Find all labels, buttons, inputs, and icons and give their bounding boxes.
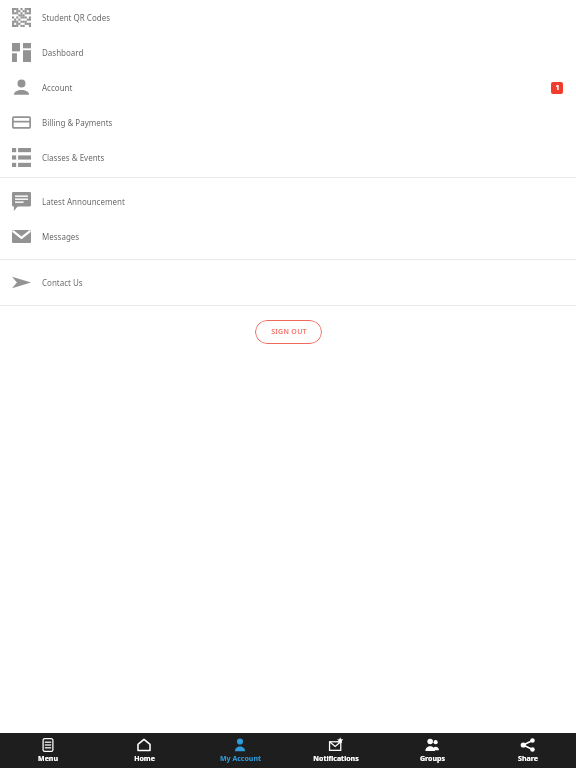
staticText: Billing & Payments xyxy=(42,117,563,128)
staticText: Share xyxy=(518,754,538,764)
button[interactable]: Notifications xyxy=(288,733,384,768)
button[interactable]: Account xyxy=(0,70,576,105)
button[interactable]: Latest Announcement xyxy=(0,184,576,219)
staticText: 1 xyxy=(555,83,560,93)
button[interactable]: Messages xyxy=(0,219,576,254)
button[interactable]: Home xyxy=(96,733,192,768)
button[interactable]: Share xyxy=(480,733,576,768)
staticText: Home xyxy=(134,754,155,764)
staticText: Menu xyxy=(38,754,58,764)
button[interactable]: Contact Us xyxy=(0,265,576,300)
staticText: Student QR Codes xyxy=(42,12,563,23)
staticText: SIGN OUT xyxy=(271,327,307,337)
staticText: Messages xyxy=(42,231,563,242)
staticText: Latest Announcement xyxy=(42,196,563,207)
button[interactable]: Dashboard xyxy=(0,35,576,70)
staticText: Contact Us xyxy=(42,277,563,288)
staticText: My Account xyxy=(220,754,261,764)
button[interactable]: Classes & Events xyxy=(0,140,576,175)
button[interactable]: My Account xyxy=(192,733,288,768)
staticText: Classes & Events xyxy=(42,152,563,163)
staticText: Dashboard xyxy=(42,47,563,58)
button[interactable]: Menu xyxy=(0,733,96,768)
button[interactable]: Billing & Payments xyxy=(0,105,576,140)
staticText: Groups xyxy=(420,754,445,764)
button[interactable]: SIGN OUT xyxy=(255,320,322,344)
button[interactable]: Student QR Codes xyxy=(0,0,576,35)
button[interactable]: Groups xyxy=(384,733,480,768)
staticText: Notifications xyxy=(313,754,359,764)
staticText: Account xyxy=(42,82,551,93)
